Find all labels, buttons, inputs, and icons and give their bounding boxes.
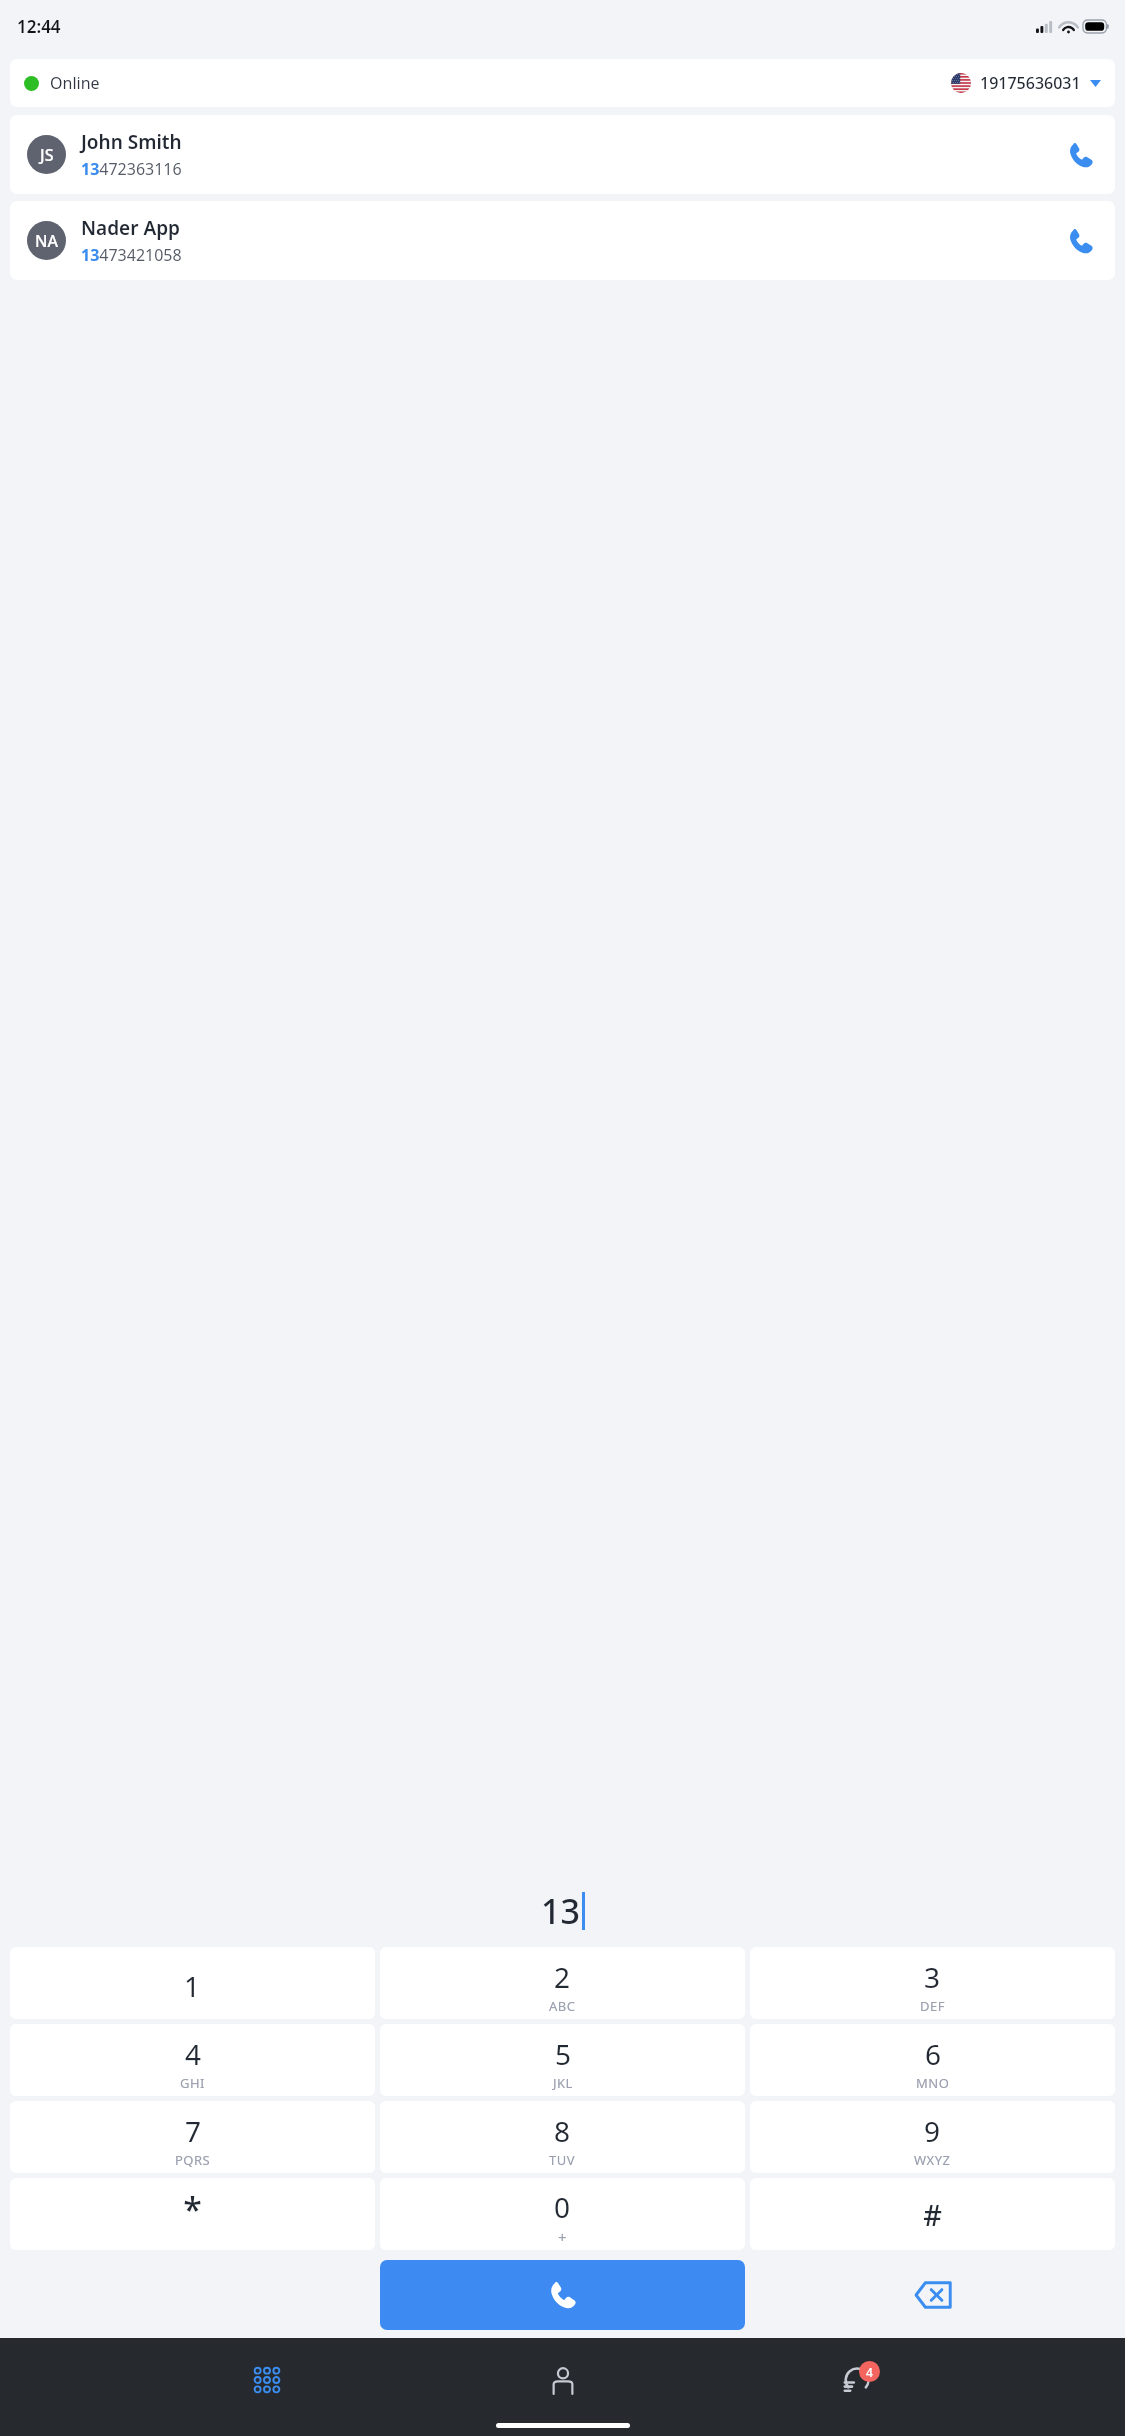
staticText: 7 xyxy=(185,2112,202,2150)
button[interactable]: 3 xyxy=(750,1947,1115,2019)
staticText: 12:44 xyxy=(17,15,61,38)
staticText: WXYZ xyxy=(914,2151,951,2169)
staticText: MNO xyxy=(916,2074,950,2092)
staticText: 1 xyxy=(184,1967,201,2005)
button[interactable]: 4 xyxy=(10,2024,375,2096)
button[interactable]: Contacts xyxy=(535,2352,591,2408)
staticText: GHI xyxy=(180,2074,206,2092)
button[interactable]: 2 xyxy=(380,1947,745,2019)
button[interactable]: * xyxy=(10,2178,375,2250)
button[interactable]: 6 xyxy=(750,2024,1115,2096)
staticText: 5 xyxy=(555,2035,572,2073)
staticText: JS xyxy=(40,144,54,166)
button[interactable]: 8 xyxy=(380,2101,745,2173)
staticText: 4 xyxy=(185,2035,202,2073)
staticText: 13473421058 xyxy=(81,244,182,266)
button[interactable]: Keypad xyxy=(239,2352,295,2408)
button[interactable]: 0 xyxy=(380,2178,745,2250)
button[interactable]: Call xyxy=(380,2260,745,2330)
staticText: + xyxy=(558,2227,568,2247)
staticText: PQRS xyxy=(175,2151,211,2169)
staticText: TUV xyxy=(549,2151,576,2169)
staticText: JKL xyxy=(553,2074,573,2092)
staticText: 8 xyxy=(554,2112,571,2150)
button[interactable]: Support, 4 new xyxy=(830,2352,886,2408)
staticText: Online xyxy=(50,72,100,94)
button[interactable]: Call John Smith xyxy=(1063,138,1097,172)
staticText: Nader App xyxy=(81,215,180,241)
staticText: 13472363116 xyxy=(81,158,182,180)
staticText: DEF xyxy=(920,1997,945,2015)
button[interactable]: NA xyxy=(10,201,1115,280)
button[interactable]: # xyxy=(750,2178,1115,2250)
staticText: # xyxy=(923,2195,942,2234)
staticText: 3 xyxy=(924,1958,941,1996)
button[interactable]: Online xyxy=(10,59,1115,107)
staticText: 4 xyxy=(866,2364,873,2380)
button[interactable]: 5 xyxy=(380,2024,745,2096)
staticText: 9 xyxy=(924,2112,941,2150)
staticText: 19175636031 xyxy=(980,72,1081,94)
button[interactable]: 1 xyxy=(10,1947,375,2019)
button[interactable]: Call Nader App xyxy=(1063,224,1097,258)
staticText: 6 xyxy=(925,2035,942,2073)
staticText: ABC xyxy=(549,1997,576,2015)
staticText: 0 xyxy=(554,2188,571,2226)
staticText: 2 xyxy=(554,1958,571,1996)
staticText: 13 xyxy=(541,1888,580,1934)
button[interactable]: Backspace xyxy=(750,2260,1115,2330)
button[interactable]: 7 xyxy=(10,2101,375,2173)
staticText: NA xyxy=(35,230,58,252)
button[interactable]: 9 xyxy=(750,2101,1115,2173)
staticText: John Smith xyxy=(81,129,182,155)
button[interactable]: JS xyxy=(10,115,1115,194)
staticText: * xyxy=(183,2186,202,2232)
